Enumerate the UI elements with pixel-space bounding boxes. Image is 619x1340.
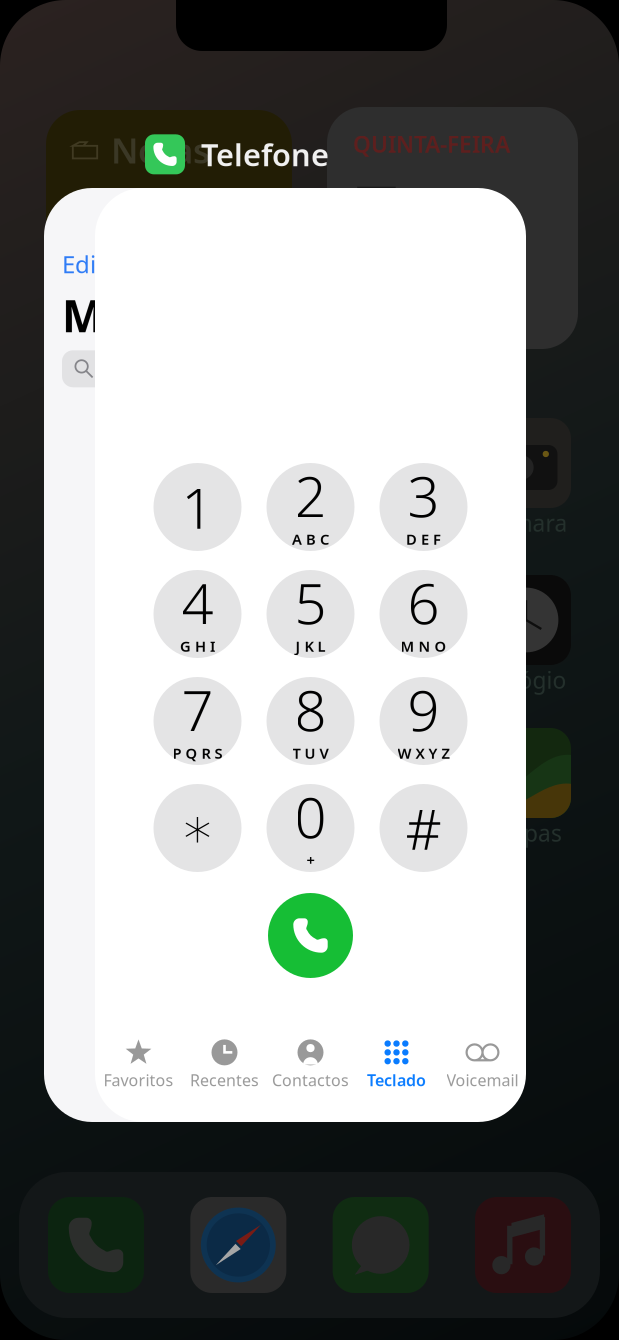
staticText: 0 bbox=[294, 779, 326, 854]
staticText: M N O bbox=[400, 636, 446, 656]
staticText: J K L bbox=[295, 636, 325, 656]
button[interactable]: 5 bbox=[266, 570, 354, 658]
staticText: Relógio bbox=[485, 665, 566, 695]
staticText: A B C bbox=[292, 529, 329, 549]
staticText: QUINTA-FEIRA bbox=[353, 129, 510, 159]
staticText: 7 bbox=[181, 672, 213, 747]
staticText: Recentes bbox=[190, 1069, 259, 1091]
staticText: Contactos bbox=[272, 1069, 349, 1091]
staticText: Voicemail bbox=[446, 1069, 518, 1091]
staticText: G H I bbox=[180, 636, 215, 656]
staticText: Notas bbox=[111, 127, 210, 173]
staticText: ∗ bbox=[180, 796, 215, 860]
button[interactable]: # bbox=[379, 784, 467, 872]
button[interactable]: 8 bbox=[266, 677, 354, 765]
button[interactable]: Voicemail bbox=[439, 1038, 525, 1090]
button[interactable]: 4 bbox=[153, 570, 241, 658]
staticText: 9 bbox=[407, 672, 439, 747]
button[interactable]: 9 bbox=[379, 677, 467, 765]
staticText: W X Y Z bbox=[397, 743, 449, 763]
staticText: Mapas bbox=[490, 818, 562, 848]
button[interactable]: 3 bbox=[379, 463, 467, 551]
staticText: D E F bbox=[406, 529, 441, 549]
button[interactable]: Contactos bbox=[267, 1038, 353, 1090]
staticText: 3 bbox=[407, 458, 439, 533]
staticText: 8 bbox=[294, 672, 326, 747]
staticText: + bbox=[306, 850, 314, 870]
button[interactable]: 7 bbox=[153, 677, 241, 765]
staticText: Favoritos bbox=[103, 1069, 173, 1091]
button[interactable]: 1 bbox=[153, 463, 241, 551]
button[interactable]: Favoritos bbox=[95, 1038, 181, 1090]
staticText: 4 bbox=[181, 565, 213, 640]
button[interactable]: 0 bbox=[266, 784, 354, 872]
button[interactable]: Teclado bbox=[353, 1038, 439, 1090]
staticText: Minhas Notas bbox=[62, 286, 364, 344]
button[interactable]: Recentes bbox=[181, 1038, 267, 1090]
button[interactable]: Chamar bbox=[268, 893, 353, 978]
staticText: Teclado bbox=[367, 1069, 426, 1091]
button[interactable]: Telefone bbox=[145, 134, 329, 175]
staticText: 1 bbox=[181, 470, 213, 544]
button[interactable]: ∗ bbox=[153, 784, 241, 872]
staticText: Editar bbox=[62, 248, 128, 280]
button[interactable]: 2 bbox=[266, 463, 354, 551]
staticText: # bbox=[405, 791, 441, 865]
staticText: 6 bbox=[407, 565, 439, 640]
staticText: P Q R S bbox=[172, 743, 222, 763]
button[interactable]: 6 bbox=[379, 570, 467, 658]
staticText: Câmara bbox=[484, 508, 567, 538]
staticText: 5 bbox=[294, 565, 326, 640]
staticText: 2 bbox=[294, 458, 326, 533]
staticText: T U V bbox=[292, 743, 328, 763]
staticText: 7 bbox=[353, 159, 400, 269]
staticText: Telefone bbox=[201, 134, 329, 175]
